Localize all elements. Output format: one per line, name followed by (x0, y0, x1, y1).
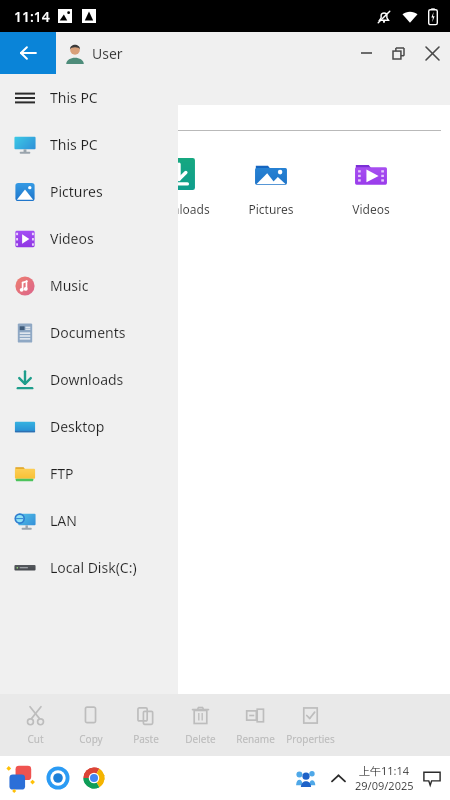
button[interactable]: Local Disk(C:) (0, 544, 178, 591)
staticText: FTP (50, 464, 74, 483)
staticText: Music (50, 276, 89, 295)
staticText: 29/09/2025 (355, 778, 414, 793)
staticText: Paste (133, 732, 159, 746)
button[interactable]: FTP (0, 450, 178, 497)
staticText: Videos (352, 201, 390, 217)
button[interactable]: Apps (4, 761, 38, 795)
staticText: Delete (185, 732, 216, 746)
button[interactable]: Paste (118, 694, 173, 756)
staticText: Videos (50, 229, 94, 248)
button[interactable]: Rename (228, 694, 283, 756)
button[interactable]: Pictures (242, 155, 300, 217)
button[interactable]: Downloads (0, 356, 178, 403)
button[interactable]: Minimize (350, 32, 382, 74)
button[interactable]: Back (0, 32, 56, 74)
staticText: Downloads (50, 370, 124, 389)
staticText: User (92, 44, 123, 63)
staticText: Desktop (50, 417, 105, 436)
button[interactable]: Close (414, 32, 450, 74)
staticText: This PC (50, 135, 98, 154)
button[interactable]: Notifications (420, 766, 444, 790)
button[interactable]: This PC (0, 121, 178, 168)
button[interactable]: Delete (173, 694, 228, 756)
button[interactable]: Documents (0, 309, 178, 356)
button[interactable]: Copy (63, 694, 118, 756)
button[interactable]: People (291, 763, 321, 793)
staticText: Copy (79, 732, 103, 746)
staticText: Local Disk(C:) (50, 558, 137, 577)
staticText: LAN (50, 511, 77, 530)
button[interactable]: LAN (0, 497, 178, 544)
staticText: 11:14 (14, 7, 50, 26)
staticText: Pictures (50, 182, 103, 201)
button[interactable]: Restore (382, 32, 414, 74)
staticText: This PC (50, 88, 98, 107)
button[interactable]: Browser (42, 762, 74, 794)
staticText: Cut (27, 732, 44, 746)
button[interactable]: This PC (0, 74, 178, 121)
button[interactable]: Desktop (0, 403, 178, 450)
staticText: 上午11:14 (359, 763, 410, 778)
button[interactable]: Videos (0, 215, 178, 262)
button[interactable]: 上午11:14 (355, 763, 414, 793)
staticText: Documents (50, 323, 126, 342)
button[interactable]: Pictures (0, 168, 178, 215)
button[interactable]: Cut (8, 694, 63, 756)
staticText: Rename (236, 732, 275, 746)
staticText: nloads (172, 201, 210, 217)
staticText: Properties (286, 732, 335, 746)
button[interactable]: Music (0, 262, 178, 309)
button[interactable]: Chrome (78, 762, 110, 794)
button[interactable]: Videos (342, 155, 400, 217)
staticText: Pictures (248, 201, 294, 217)
button[interactable]: Properties (283, 694, 338, 756)
button[interactable]: Show hidden icons (325, 765, 351, 791)
